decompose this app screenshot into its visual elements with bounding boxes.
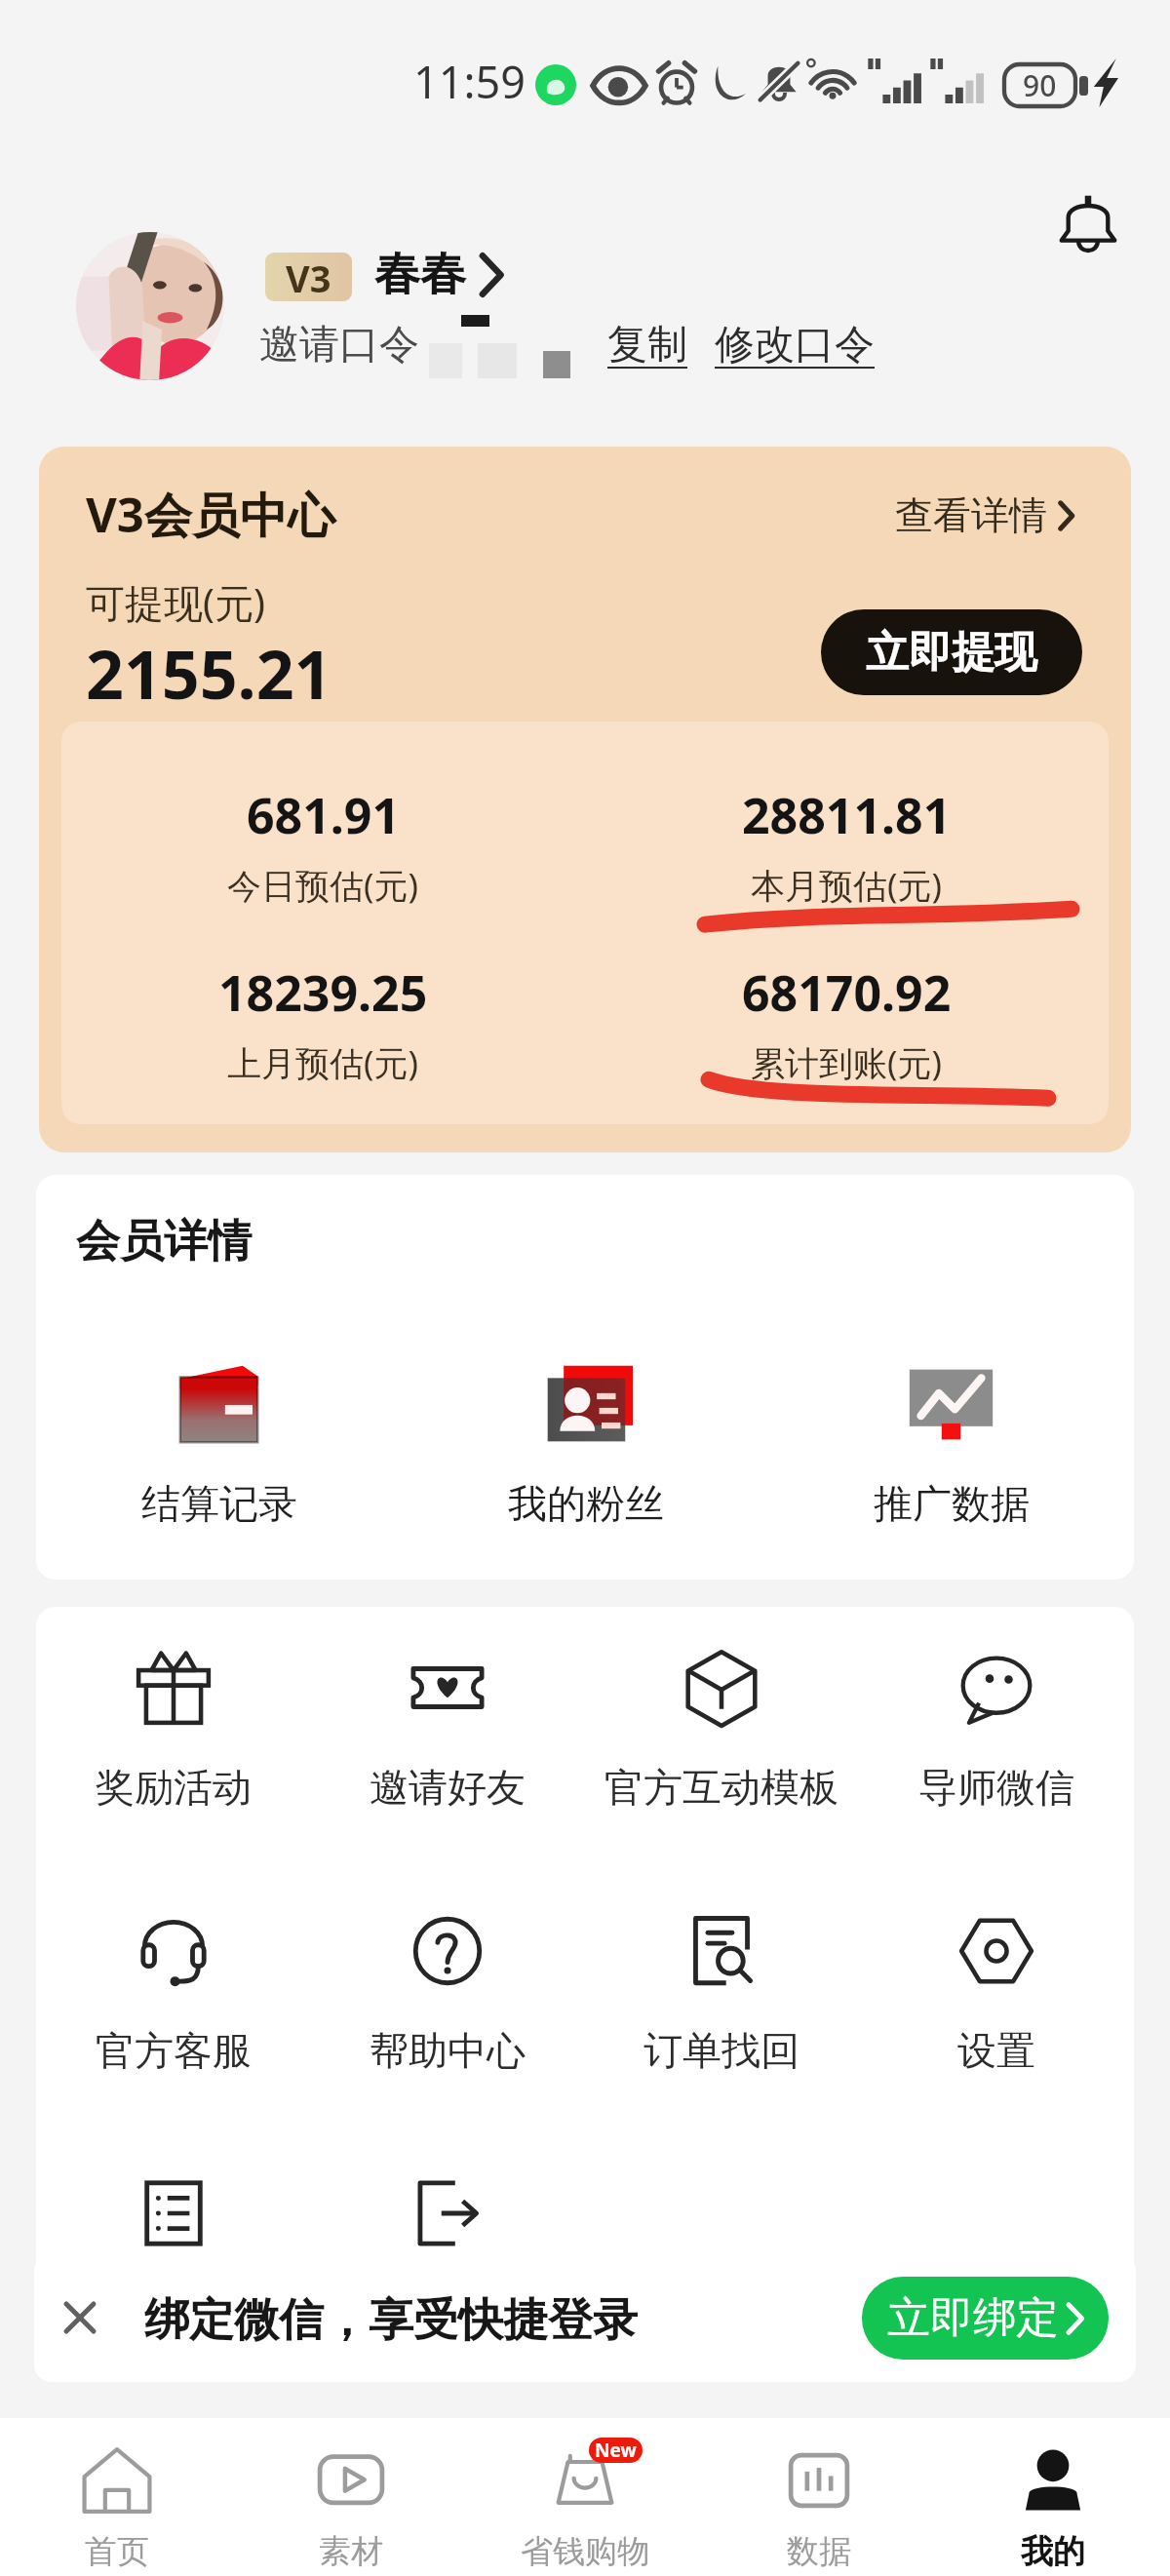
staticText: 邀请好友: [370, 1763, 526, 1812]
staticText: 结算记录: [141, 1479, 297, 1528]
staticText: 2155.21: [86, 628, 332, 719]
staticText: 修改口令: [715, 320, 875, 371]
button[interactable]: Profile photo: [76, 232, 224, 380]
button[interactable]: Notifications: [1049, 183, 1127, 261]
staticText: 18239.25: [218, 959, 428, 1026]
staticText: 我的粉丝: [508, 1479, 664, 1528]
staticText: 68170.92: [742, 959, 952, 1026]
staticText: 帮助中心: [370, 2026, 526, 2075]
staticText: 本月预估(元): [751, 862, 943, 909]
button[interactable]: 官方客服: [36, 1913, 310, 2075]
button[interactable]: V3: [265, 253, 352, 301]
staticText: 复制: [607, 320, 687, 371]
button[interactable]: 复制: [607, 320, 687, 371]
staticText: 奖励活动: [96, 1763, 252, 1812]
staticText: 春春: [374, 246, 466, 303]
button[interactable]: 设置: [859, 1913, 1134, 2075]
button[interactable]: 首页: [0, 2418, 234, 2576]
staticText: 省钱购物: [521, 2531, 649, 2572]
staticText: V3会员中心: [86, 482, 335, 547]
staticText: 官方客服: [96, 2026, 252, 2075]
staticText: 素材: [319, 2531, 383, 2572]
button[interactable]: New: [468, 2418, 702, 2576]
button[interactable]: 数据: [702, 2418, 936, 2576]
button[interactable]: 修改口令: [715, 320, 875, 371]
staticText: 上月预估(元): [227, 1039, 419, 1086]
staticText: V3: [286, 253, 331, 301]
staticText: 今日预估(元): [227, 862, 419, 909]
button[interactable]: [310, 2175, 584, 2251]
staticText: 可提现(元): [86, 575, 265, 629]
button[interactable]: 帮助中心: [310, 1913, 584, 2075]
staticText: 立即提现: [866, 626, 1037, 680]
staticText: 推广数据: [874, 1479, 1030, 1528]
button[interactable]: Close: [48, 2285, 112, 2350]
button[interactable]: 立即提现: [821, 609, 1082, 695]
button[interactable]: 我的: [936, 2418, 1170, 2576]
staticText: 首页: [85, 2531, 149, 2572]
staticText: 绑定微信，享受快捷登录: [144, 2292, 638, 2349]
staticText: New: [595, 2438, 637, 2463]
staticText: 累计到账(元): [751, 1039, 943, 1086]
button[interactable]: 素材: [234, 2418, 468, 2576]
staticText: 订单找回: [643, 2026, 799, 2075]
staticText: 导师微信: [918, 1763, 1074, 1812]
button[interactable]: 官方互动模板: [584, 1650, 859, 1812]
staticText: 邀请口令: [259, 320, 419, 371]
staticText: 官方互动模板: [604, 1763, 838, 1812]
button[interactable]: 推广数据: [768, 1357, 1134, 1528]
button[interactable]: 订单找回: [584, 1913, 859, 2075]
staticText: 查看详情: [895, 491, 1047, 539]
staticText: 会员详情: [76, 1214, 252, 1269]
button[interactable]: 春春: [374, 246, 503, 303]
button[interactable]: 立即绑定: [862, 2277, 1109, 2360]
staticText: 数据: [787, 2531, 851, 2572]
staticText: 90: [1023, 65, 1057, 105]
button[interactable]: 我的粉丝: [403, 1357, 768, 1528]
staticText: 28811.81: [742, 782, 952, 848]
button[interactable]: 邀请好友: [310, 1650, 584, 1812]
staticText: 681.91: [247, 782, 401, 848]
button[interactable]: 结算记录: [36, 1357, 403, 1528]
staticText: 11:59: [413, 52, 526, 111]
button[interactable]: 查看详情: [895, 491, 1074, 539]
button[interactable]: [36, 2175, 310, 2251]
button[interactable]: 导师微信: [859, 1650, 1134, 1812]
staticText: 我的: [1021, 2531, 1085, 2572]
staticText: 设置: [957, 2026, 1035, 2075]
staticText: 立即绑定: [887, 2291, 1059, 2345]
button[interactable]: 奖励活动: [36, 1650, 310, 1812]
